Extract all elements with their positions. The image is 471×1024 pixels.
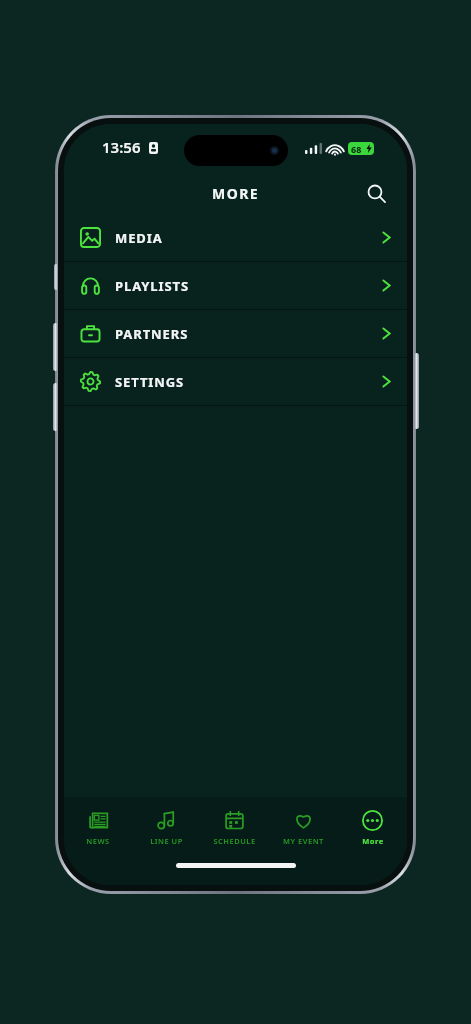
button[interactable]: MEDIA [64, 214, 407, 261]
staticText: More [362, 836, 384, 846]
staticText: NEWS [86, 836, 110, 846]
staticText: MEDIA [115, 229, 163, 247]
button[interactable]: PARTNERS [64, 310, 407, 357]
button[interactable]: SCHEDULE [200, 797, 269, 859]
staticText: SCHEDULE [213, 836, 256, 846]
button[interactable]: PLAYLISTS [64, 262, 407, 309]
staticText: PARTNERS [115, 325, 189, 343]
staticText: MY EVENT [283, 836, 324, 846]
staticText: SETTINGS [115, 373, 185, 391]
staticText: LINE UP [150, 836, 183, 846]
staticText: 13:56 [102, 137, 141, 157]
button[interactable]: NEWS [64, 797, 132, 859]
button[interactable]: More [338, 797, 407, 859]
staticText: 68 [351, 143, 362, 155]
staticText: PLAYLISTS [115, 277, 189, 295]
button[interactable]: SETTINGS [64, 358, 407, 405]
staticText: MORE [212, 184, 259, 203]
button[interactable]: LINE UP [132, 797, 200, 859]
button[interactable]: Search [359, 176, 393, 210]
button[interactable]: MY EVENT [269, 797, 338, 859]
